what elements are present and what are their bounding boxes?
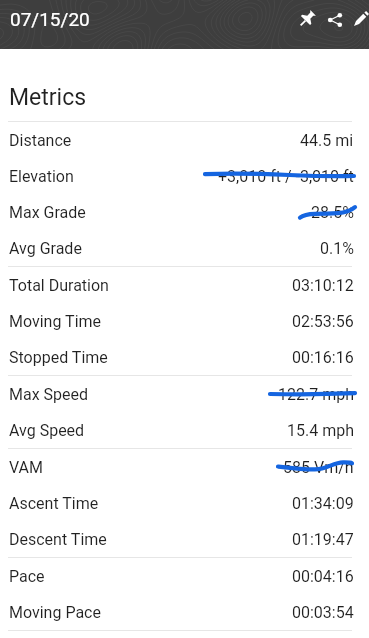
staticText: 00:16:16 xyxy=(292,348,354,367)
button[interactable]: Moving Pace xyxy=(0,594,369,630)
staticText: Moving Time xyxy=(9,312,102,331)
staticText: 0.1% xyxy=(320,239,354,258)
button[interactable]: Ascent Time xyxy=(0,485,369,521)
button[interactable]: Avg Speed xyxy=(0,412,369,448)
staticText: 07/15/20 xyxy=(10,8,90,30)
staticText: Max Speed xyxy=(9,385,89,404)
staticText: 28.5% xyxy=(311,203,354,222)
staticText: 00:03:54 xyxy=(292,603,354,622)
staticText: 03:10:12 xyxy=(292,276,354,295)
staticText: Max Grade xyxy=(9,203,86,222)
staticText: Avg Speed xyxy=(9,421,85,440)
staticText: Elevation xyxy=(9,167,74,186)
staticText: Stopped Time xyxy=(9,348,108,367)
staticText: Ascent Time xyxy=(9,494,99,513)
button[interactable]: Max Speed xyxy=(0,376,369,412)
staticText: 122.7 mph xyxy=(278,385,354,404)
staticText: Pace xyxy=(9,567,45,586)
button[interactable]: Total Duration xyxy=(0,267,369,303)
staticText: Descent Time xyxy=(9,530,107,549)
staticText: Moving Pace xyxy=(9,603,101,622)
button[interactable]: Descent Time xyxy=(0,521,369,557)
button[interactable]: Edit xyxy=(348,6,369,32)
button[interactable]: Avg Grade xyxy=(0,230,369,266)
button[interactable]: Distance xyxy=(0,122,369,158)
staticText: 44.5 mi xyxy=(300,131,354,150)
button[interactable]: VAM xyxy=(0,449,369,485)
button[interactable]: Pace xyxy=(0,558,369,594)
staticText: Distance xyxy=(9,131,72,150)
staticText: 02:53:56 xyxy=(292,312,354,331)
button[interactable]: Moving Time xyxy=(0,303,369,339)
button[interactable]: Pin xyxy=(294,6,320,32)
button[interactable]: Max Grade xyxy=(0,194,369,230)
staticText: 15.4 mph xyxy=(287,421,354,440)
staticText: 01:34:09 xyxy=(292,494,354,513)
staticText: Total Duration xyxy=(9,276,109,295)
staticText: Metrics xyxy=(9,84,87,111)
button[interactable]: Elevation xyxy=(0,158,369,194)
staticText: 01:19:47 xyxy=(292,530,354,549)
staticText: 585 Vm/h xyxy=(283,458,354,477)
button[interactable]: Share xyxy=(322,7,348,33)
button[interactable]: Stopped Time xyxy=(0,339,369,375)
staticText: 00:04:16 xyxy=(292,567,354,586)
staticText: VAM xyxy=(9,458,44,477)
staticText: Avg Grade xyxy=(9,239,82,258)
staticText: +3,010 ft / -3,010 ft xyxy=(218,167,354,186)
